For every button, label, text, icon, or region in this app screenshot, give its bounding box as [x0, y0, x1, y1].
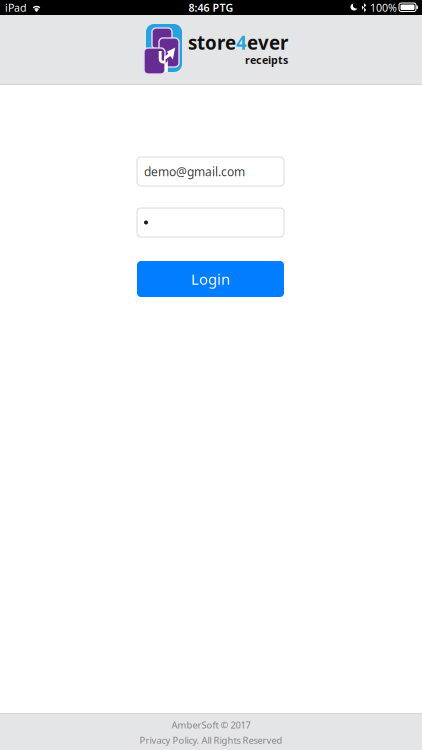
staticText: 4	[236, 30, 247, 55]
staticText: 100%	[370, 0, 397, 15]
staticText: 8:46 PTG	[188, 0, 233, 15]
staticText: demo@gmail.com	[144, 163, 245, 179]
staticText: ever	[247, 30, 288, 55]
staticText: receipts	[245, 53, 288, 67]
button[interactable]: Privacy Policy. All Rights Reserved	[139, 734, 282, 746]
button[interactable]: Email address	[137, 157, 284, 186]
staticText: store	[188, 30, 236, 55]
staticText: AmberSoft © 2017	[171, 719, 250, 731]
staticText: Login	[191, 269, 230, 289]
button[interactable]: Login	[137, 261, 284, 297]
staticText: iPad	[5, 0, 27, 15]
button[interactable]: Password	[137, 208, 284, 237]
staticText: Privacy Policy. All Rights Reserved	[139, 734, 282, 746]
